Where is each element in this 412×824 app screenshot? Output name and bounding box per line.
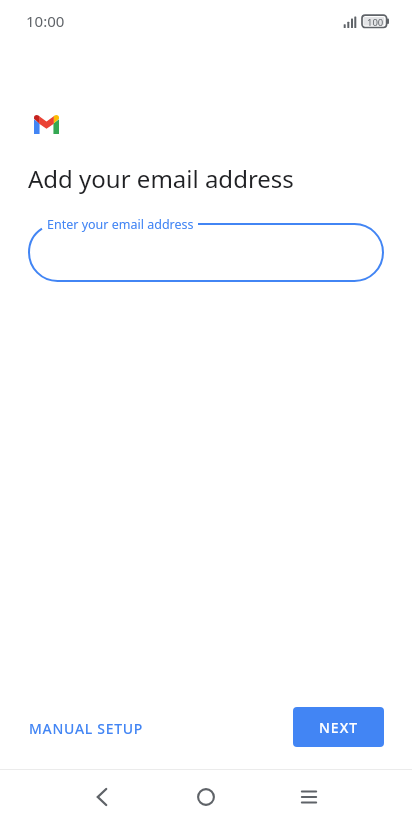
button[interactable]: MANUAL SETUP xyxy=(20,711,153,746)
staticText: Add your email address xyxy=(28,162,294,195)
button[interactable]: Back xyxy=(75,770,129,824)
staticText: 10:00 xyxy=(26,11,65,31)
button[interactable]: NEXT xyxy=(293,707,384,747)
staticText: MANUAL SETUP xyxy=(29,719,144,738)
button[interactable]: Home xyxy=(179,770,233,824)
button[interactable]: Recent apps xyxy=(282,770,336,824)
button[interactable]: Enter your email address xyxy=(28,223,384,282)
staticText: Enter your email address xyxy=(47,216,194,233)
staticText: NEXT xyxy=(319,718,359,737)
staticText: 100 xyxy=(367,16,384,29)
